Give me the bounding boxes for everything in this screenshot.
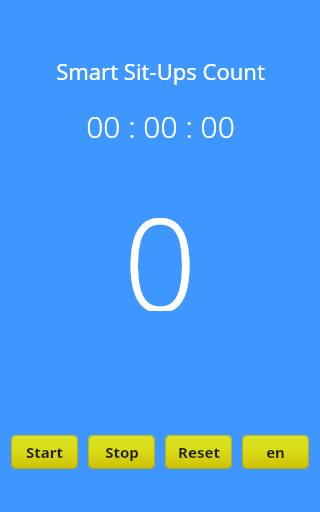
button[interactable]: Start bbox=[11, 435, 78, 469]
staticText: Stop bbox=[105, 442, 139, 462]
staticText: Start bbox=[26, 442, 63, 462]
button[interactable]: en bbox=[242, 435, 309, 469]
staticText: Reset bbox=[178, 442, 220, 462]
staticText: en bbox=[266, 442, 285, 462]
staticText: 0 bbox=[123, 175, 197, 311]
button[interactable]: Reset bbox=[165, 435, 232, 469]
button[interactable]: Stop bbox=[88, 435, 155, 469]
staticText: 00 : 00 : 00 bbox=[86, 106, 235, 147]
staticText: Smart Sit-Ups Count bbox=[56, 56, 265, 86]
